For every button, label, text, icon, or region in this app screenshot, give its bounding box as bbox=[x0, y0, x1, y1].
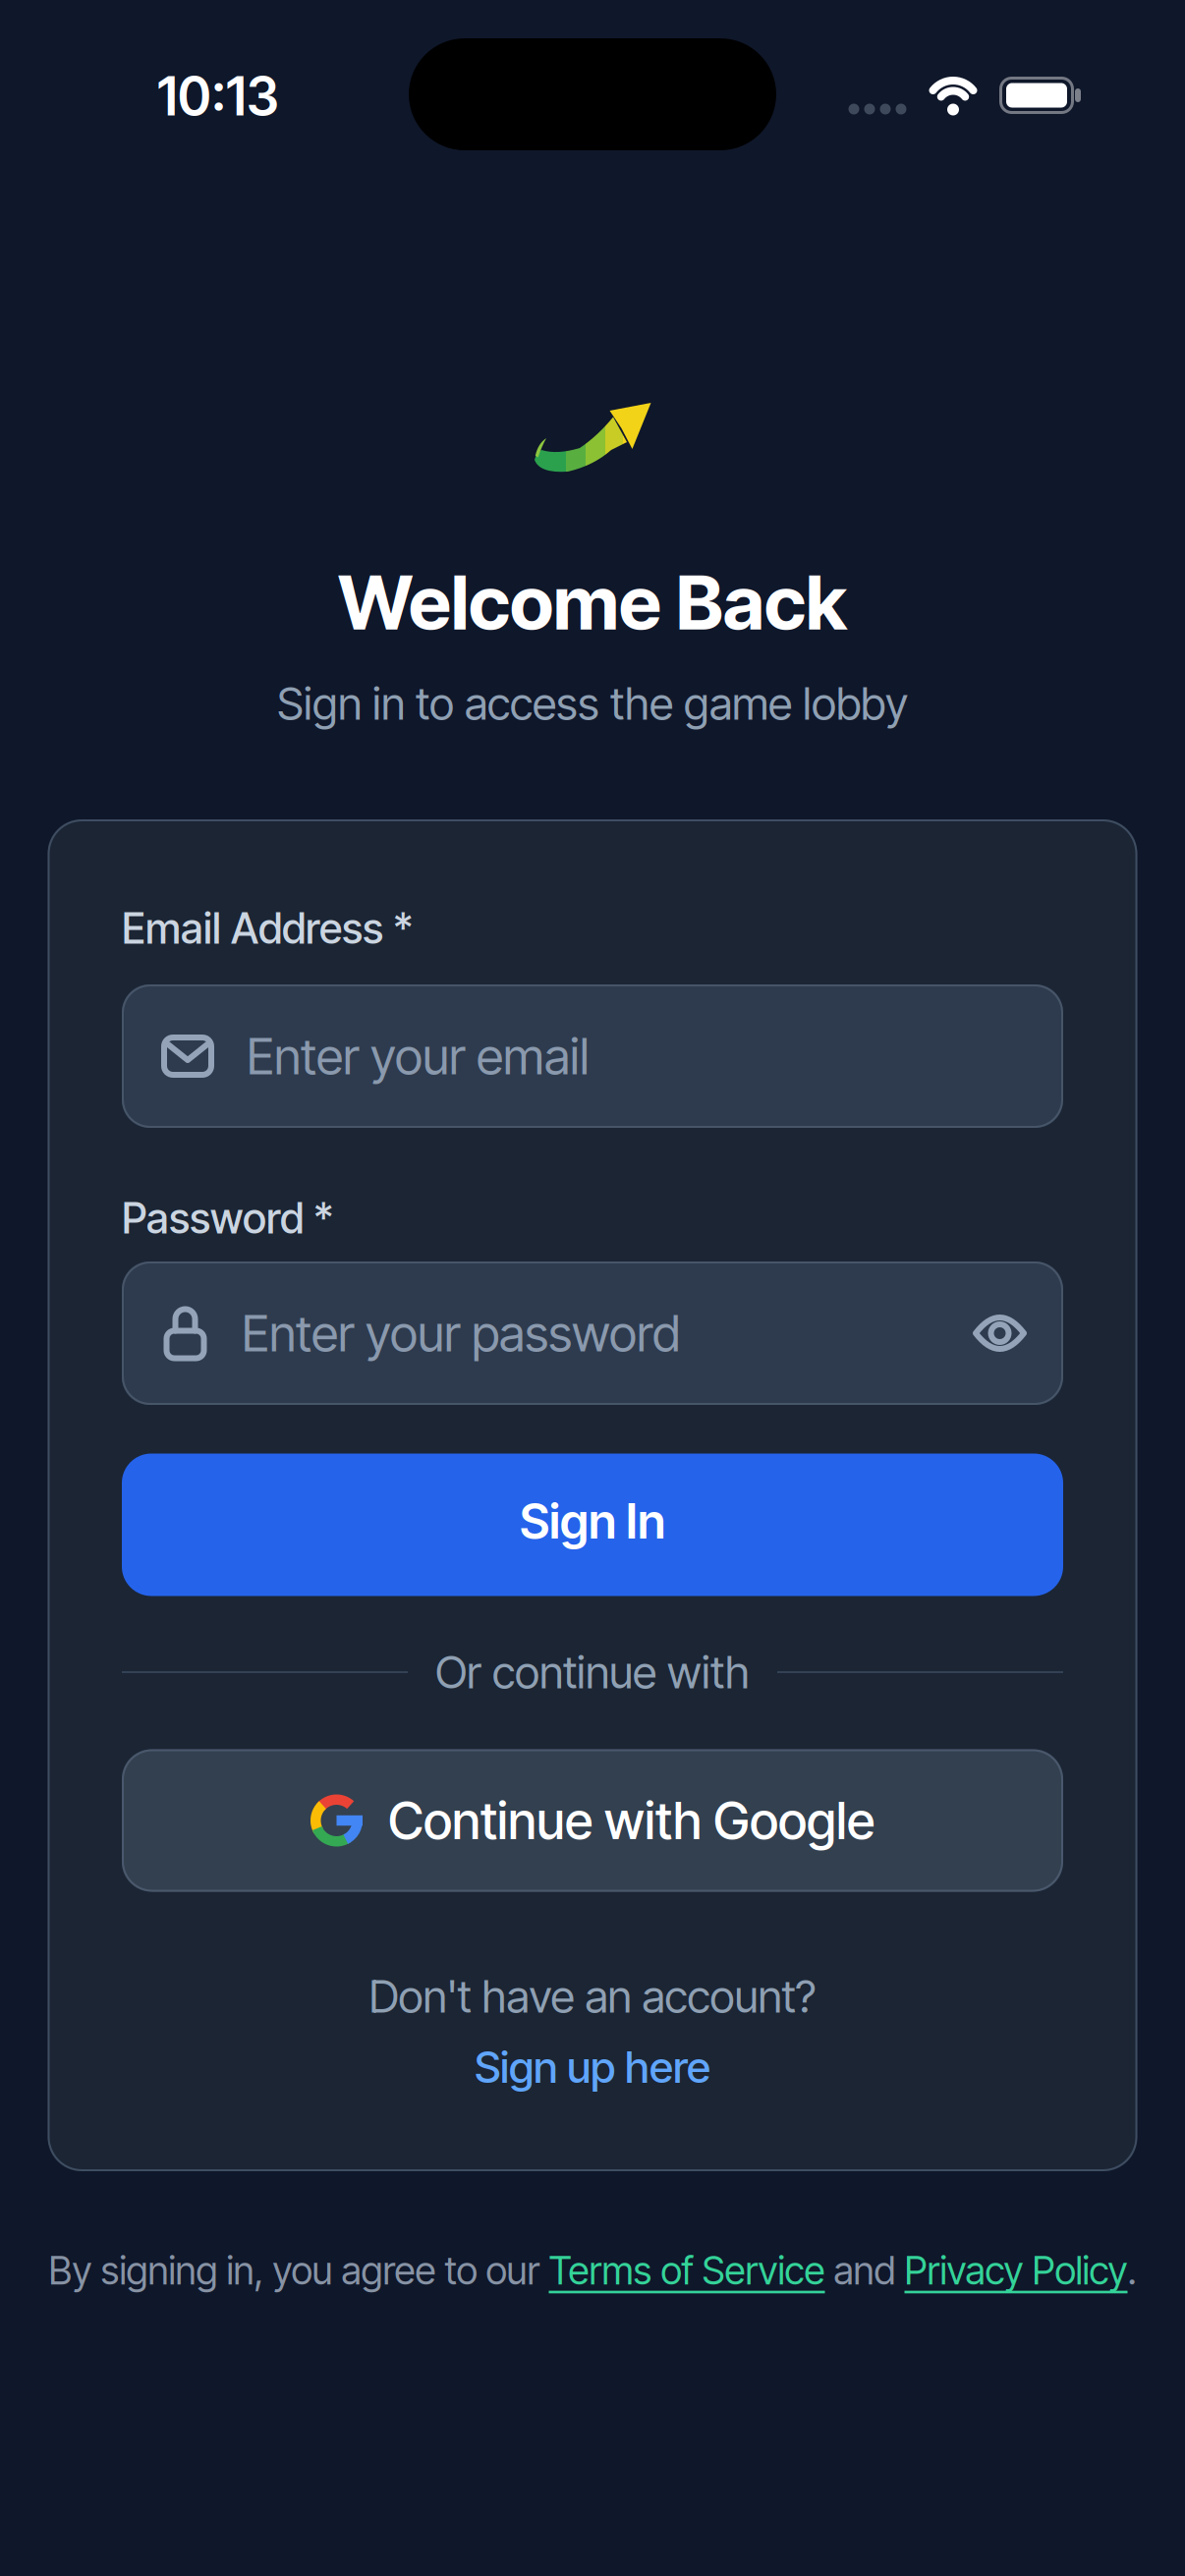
staticText: By signing in, you agree to our bbox=[49, 2247, 549, 2294]
staticText: Welcome Back bbox=[338, 557, 847, 647]
staticText: Email Address * bbox=[122, 903, 413, 954]
staticText: Terms of Service bbox=[549, 2247, 825, 2294]
staticText: Privacy Policy bbox=[904, 2247, 1128, 2294]
staticText: Sign In bbox=[520, 1492, 665, 1550]
staticText: Continue with Google bbox=[388, 1790, 875, 1851]
staticText: 10:13 bbox=[157, 65, 279, 128]
staticText: . bbox=[1128, 2247, 1136, 2294]
staticText: Enter your email bbox=[247, 1026, 590, 1086]
staticText: Or continue with bbox=[435, 1645, 750, 1699]
staticText: and bbox=[825, 2247, 904, 2294]
staticText: Sign up here bbox=[475, 2041, 710, 2093]
staticText: Enter your password bbox=[242, 1303, 680, 1363]
staticText: Sign in to access the game lobby bbox=[277, 677, 908, 730]
staticText: Don't have an account? bbox=[369, 1969, 816, 2023]
staticText: Password * bbox=[122, 1193, 333, 1244]
